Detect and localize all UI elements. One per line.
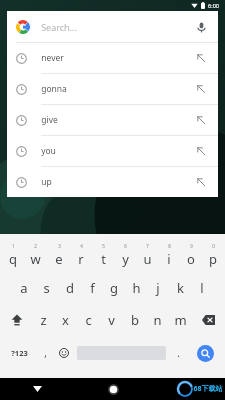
button[interactable]: 5 — [92, 238, 114, 272]
staticText: gonna — [41, 83, 67, 95]
staticText: x — [62, 311, 69, 329]
button[interactable]: j — [147, 272, 169, 304]
button[interactable]: never — [7, 43, 218, 73]
staticText: Search... — [41, 21, 77, 33]
staticText: p — [209, 250, 217, 268]
button[interactable]: Emoji — [54, 336, 74, 370]
staticText: ?123 — [11, 348, 28, 358]
staticText: up — [41, 176, 52, 188]
button[interactable]: ?123 — [2, 336, 36, 370]
staticText: u — [143, 250, 152, 268]
button[interactable]: 7 — [136, 238, 158, 272]
button[interactable]: 8 — [158, 238, 180, 272]
button[interactable]: Insert never — [193, 50, 209, 66]
button[interactable]: Backspace — [192, 304, 224, 336]
button[interactable]: gonna — [7, 74, 218, 104]
staticText: j — [156, 279, 160, 297]
staticText: w — [30, 250, 41, 268]
staticText: i — [167, 250, 171, 268]
button[interactable]: v — [100, 304, 123, 336]
staticText: , — [44, 346, 47, 360]
staticText: 1 — [12, 243, 15, 249]
staticText: z — [40, 311, 47, 329]
staticText: e — [55, 250, 63, 268]
button[interactable]: n — [146, 304, 169, 336]
button[interactable]: m — [169, 304, 192, 336]
staticText: m — [174, 311, 187, 329]
button[interactable]: z — [32, 304, 54, 336]
button[interactable]: 3 — [47, 238, 70, 272]
button[interactable]: d — [58, 272, 81, 304]
staticText: . — [177, 346, 180, 360]
staticText: 6:00 — [208, 2, 219, 9]
button[interactable]: you — [7, 136, 218, 166]
staticText: 9 — [190, 243, 193, 249]
staticText: a — [20, 279, 28, 297]
staticText: s — [43, 279, 50, 297]
staticText: 5 — [102, 243, 105, 249]
button[interactable]: k — [169, 272, 191, 304]
button[interactable]: x — [54, 304, 77, 336]
staticText: you — [41, 145, 56, 157]
button[interactable]: Insert gonna — [193, 81, 209, 97]
button[interactable]: f — [81, 272, 103, 304]
button[interactable]: l — [191, 272, 213, 304]
staticText: n — [153, 311, 162, 329]
staticText: l — [200, 279, 204, 297]
button[interactable]: 1 — [1, 238, 24, 272]
button[interactable]: Insert give — [193, 112, 209, 128]
staticText: 8 — [168, 243, 171, 249]
button[interactable]: g — [103, 272, 125, 304]
button[interactable]: b — [123, 304, 146, 336]
button[interactable]: 2 — [24, 238, 47, 272]
button[interactable]: Back — [0, 378, 75, 400]
staticText: f — [90, 279, 95, 297]
staticText: 2 — [34, 243, 37, 249]
staticText: 3 — [58, 243, 61, 249]
button[interactable]: Insert you — [193, 143, 209, 159]
staticText: t — [101, 250, 106, 268]
staticText: b — [131, 311, 139, 329]
staticText: q — [9, 250, 17, 268]
button[interactable]: Voice search — [193, 19, 209, 35]
button[interactable]: 4 — [70, 238, 92, 272]
button[interactable]: Search... — [7, 11, 218, 42]
staticText: 0 — [212, 243, 215, 249]
staticText: h — [132, 279, 141, 297]
staticText: 7 — [146, 243, 149, 249]
button[interactable]: c — [77, 304, 100, 336]
staticText: g — [110, 279, 118, 297]
button[interactable]: h — [125, 272, 147, 304]
staticText: 4 — [80, 243, 83, 249]
button[interactable]: . — [169, 336, 187, 370]
staticText: v — [108, 311, 115, 329]
staticText: give — [41, 114, 58, 126]
button[interactable]: s — [35, 272, 58, 304]
button[interactable]: 9 — [180, 238, 202, 272]
button[interactable]: Search — [197, 345, 214, 362]
button[interactable]: 0 — [202, 238, 224, 272]
staticText: 68下载站 — [193, 384, 223, 394]
button[interactable]: 6 — [114, 238, 136, 272]
staticText: never — [41, 52, 64, 64]
button[interactable]: , — [36, 336, 54, 370]
staticText: 6 — [124, 243, 127, 249]
staticText: k — [177, 279, 184, 297]
button[interactable]: a — [12, 272, 35, 304]
staticText: d — [66, 279, 74, 297]
button[interactable]: give — [7, 105, 218, 135]
button[interactable]: up — [7, 167, 218, 197]
staticText: y — [122, 250, 129, 268]
staticText: c — [85, 311, 92, 329]
staticText: o — [187, 250, 195, 268]
button[interactable]: Shift — [1, 304, 32, 336]
button[interactable]: Home — [88, 378, 138, 400]
button[interactable]: Insert up — [193, 174, 209, 190]
staticText: r — [78, 250, 84, 268]
